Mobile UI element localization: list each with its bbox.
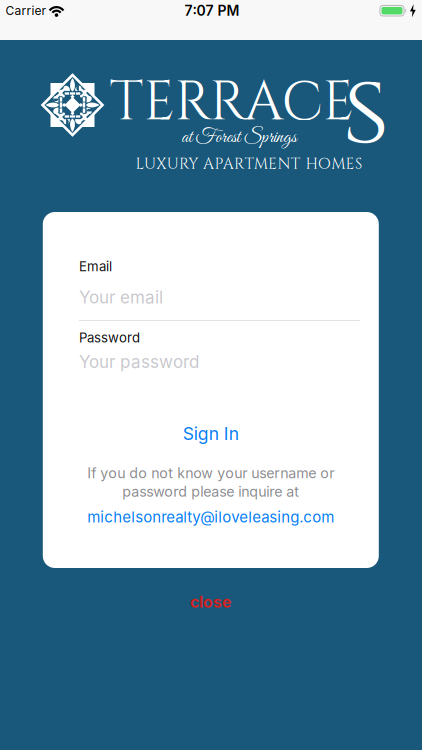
staticText: Password — [79, 330, 140, 346]
staticText: at Forest Springs — [181, 125, 296, 150]
staticText: Carrier — [5, 3, 46, 18]
textField[interactable]: Your email — [79, 287, 163, 308]
staticText: Your password — [79, 351, 199, 372]
staticText: TERRACE — [109, 66, 353, 140]
staticText: 7:07 PM — [184, 2, 239, 19]
staticText: If you do not know your username or — [87, 464, 334, 482]
staticText: close — [190, 592, 232, 612]
staticText: Your email — [79, 287, 163, 308]
staticText: michelsonrealty@iloveleasing.com — [87, 508, 334, 526]
secureTextField[interactable]: Your password — [79, 351, 199, 372]
staticText: Email — [79, 258, 112, 274]
button[interactable]: close — [190, 592, 232, 612]
staticText: LUXURY APARTMENT HOMES — [136, 154, 362, 174]
staticText: S — [346, 60, 386, 174]
staticText: password please inquire at — [122, 483, 299, 500]
button[interactable]: Sign In — [183, 423, 239, 444]
staticText: Sign In — [183, 423, 239, 444]
button[interactable]: michelsonrealty@iloveleasing.com — [87, 508, 334, 526]
